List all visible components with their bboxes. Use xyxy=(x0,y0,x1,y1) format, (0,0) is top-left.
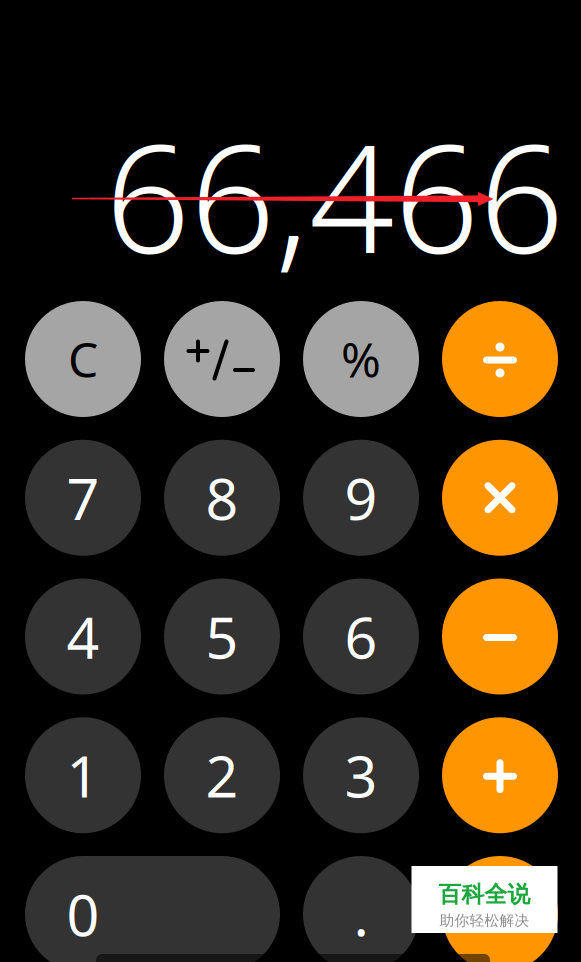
button[interactable]: Divide xyxy=(442,301,558,417)
staticText: 3 xyxy=(344,737,377,813)
staticText: 8 xyxy=(205,460,238,536)
button[interactable]: 5 xyxy=(164,578,280,694)
button[interactable]: 8 xyxy=(164,440,280,556)
button[interactable]: 9 xyxy=(303,440,419,556)
staticText: 7 xyxy=(66,460,99,536)
staticText: 66,466 xyxy=(105,96,564,295)
staticText: . xyxy=(353,876,368,952)
staticText: 4 xyxy=(66,598,99,674)
button[interactable]: % xyxy=(303,301,419,417)
staticText: 9 xyxy=(344,460,377,536)
staticText: C xyxy=(68,327,98,391)
staticText: 百科全说 xyxy=(438,881,530,908)
button[interactable]: C xyxy=(25,301,141,417)
staticText: 0 xyxy=(66,876,99,952)
button[interactable]: Subtract xyxy=(442,578,558,694)
staticText: 5 xyxy=(205,598,238,674)
staticText: 1 xyxy=(66,737,99,813)
staticText: % xyxy=(341,327,381,391)
button[interactable]: Equals xyxy=(442,856,558,962)
staticText: 助你轻松解决 xyxy=(439,911,529,929)
button[interactable]: 3 xyxy=(303,717,419,833)
button[interactable]: . xyxy=(303,856,419,962)
staticText: 6 xyxy=(344,598,377,674)
button[interactable]: 0 xyxy=(25,856,280,962)
button[interactable]: 2 xyxy=(164,717,280,833)
button[interactable]: 1 xyxy=(25,717,141,833)
button[interactable]: Plus Minus xyxy=(164,301,280,417)
button[interactable]: 6 xyxy=(303,578,419,694)
button[interactable]: Multiply xyxy=(442,440,558,556)
button[interactable]: 4 xyxy=(25,578,141,694)
button[interactable]: 7 xyxy=(25,440,141,556)
button[interactable]: Add xyxy=(442,717,558,833)
staticText: 2 xyxy=(205,737,238,813)
